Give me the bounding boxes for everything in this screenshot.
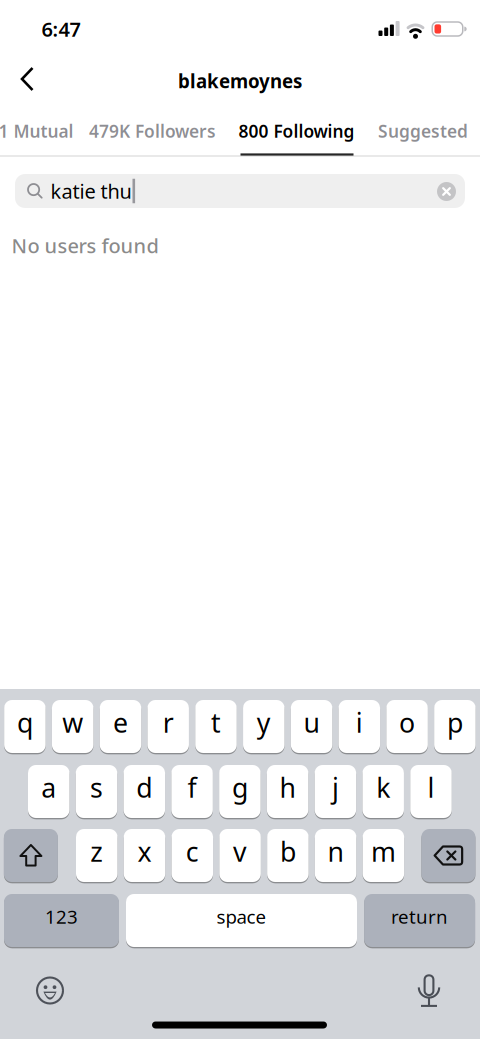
staticText: 123 <box>45 904 78 929</box>
staticText: u <box>304 705 320 740</box>
staticText: h <box>280 770 296 805</box>
staticText: q <box>17 705 33 740</box>
button[interactable]: 800 Following <box>238 119 354 142</box>
staticText: space <box>216 904 266 929</box>
staticText: n <box>328 834 344 869</box>
staticText: 1 Mutual <box>0 119 73 142</box>
staticText: i <box>356 705 363 740</box>
staticText: j <box>332 770 339 805</box>
button[interactable]: j <box>315 764 356 819</box>
staticText: Suggested <box>378 119 468 142</box>
staticText: return <box>391 904 448 929</box>
staticText: v <box>233 834 247 869</box>
button[interactable]: n <box>315 828 356 883</box>
staticText: r <box>163 705 174 740</box>
button[interactable]: Clear search <box>437 182 456 201</box>
staticText: y <box>257 705 271 740</box>
staticText: s <box>90 770 103 805</box>
button[interactable]: k <box>362 764 404 819</box>
button[interactable]: 1 Mutual <box>0 119 73 142</box>
button[interactable]: x <box>124 828 165 883</box>
button[interactable]: u <box>291 699 332 754</box>
button[interactable]: s <box>76 764 117 819</box>
staticText: 800 Following <box>238 119 354 142</box>
button[interactable]: b <box>267 828 309 883</box>
button[interactable]: l <box>410 764 452 819</box>
button[interactable]: Delete <box>421 828 475 883</box>
button[interactable]: 123 <box>4 893 119 948</box>
button[interactable]: z <box>76 828 117 883</box>
staticText: l <box>427 770 434 805</box>
button[interactable]: h <box>267 764 308 819</box>
staticText: k <box>376 770 390 805</box>
staticText: c <box>186 834 199 869</box>
button[interactable]: Emoji <box>35 976 64 1005</box>
button[interactable]: return <box>364 893 475 948</box>
staticText: t <box>211 705 221 740</box>
button[interactable]: m <box>363 828 404 883</box>
staticText: f <box>188 770 197 805</box>
staticText: blakemoynes <box>178 69 302 93</box>
button[interactable]: q <box>4 699 46 754</box>
staticText: z <box>90 834 103 869</box>
button[interactable]: space <box>126 893 357 948</box>
button[interactable]: o <box>386 699 428 754</box>
staticText: m <box>371 834 396 869</box>
button[interactable]: Suggested <box>378 119 468 142</box>
staticText: e <box>113 705 128 740</box>
button[interactable]: 479K Followers <box>89 119 216 142</box>
button[interactable]: Dictate <box>418 973 440 1007</box>
staticText: p <box>447 705 463 740</box>
button[interactable]: p <box>434 699 476 754</box>
staticText: o <box>399 705 415 740</box>
button[interactable]: katie thu <box>15 174 465 208</box>
button[interactable]: f <box>171 764 213 819</box>
staticText: No users found <box>11 232 158 259</box>
staticText: w <box>62 705 83 740</box>
button[interactable]: y <box>243 699 285 754</box>
button[interactable]: c <box>172 828 213 883</box>
button[interactable]: r <box>147 699 189 754</box>
staticText: b <box>280 834 296 869</box>
button[interactable]: v <box>219 828 261 883</box>
staticText: a <box>41 770 56 805</box>
staticText: x <box>137 834 151 869</box>
staticText: katie thu <box>50 178 131 204</box>
button[interactable]: t <box>195 699 237 754</box>
button[interactable]: d <box>124 764 165 819</box>
staticText: g <box>232 770 248 805</box>
button[interactable]: w <box>52 699 93 754</box>
button[interactable]: Shift <box>4 828 58 883</box>
button[interactable]: g <box>219 764 261 819</box>
staticText: 6:47 <box>41 16 80 42</box>
button[interactable]: i <box>339 699 380 754</box>
staticText: 479K Followers <box>89 119 216 142</box>
button[interactable]: a <box>28 764 69 819</box>
staticText: d <box>136 770 152 805</box>
button[interactable]: Back <box>19 65 36 92</box>
button[interactable]: e <box>100 699 141 754</box>
